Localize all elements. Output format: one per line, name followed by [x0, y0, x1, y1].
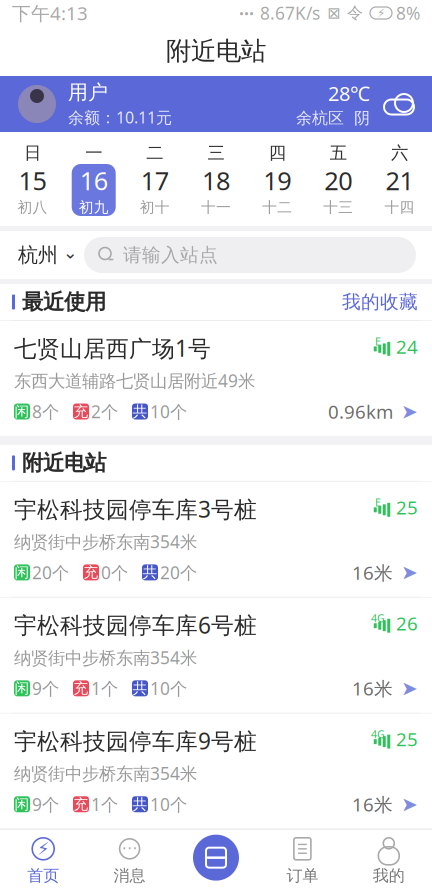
staticText: ➤	[401, 400, 418, 423]
staticText: 十一	[201, 198, 231, 216]
staticText: 闲	[14, 563, 29, 581]
staticText: 最近使用	[22, 289, 106, 315]
staticText: 25	[396, 495, 418, 520]
staticText: 充	[73, 795, 88, 813]
button[interactable]: ⋯	[86, 832, 173, 890]
staticText: ➤	[401, 677, 418, 700]
staticText: 共	[132, 795, 147, 813]
staticText: 1个	[91, 793, 118, 816]
staticText: 纳贤街中步桥东南354米	[14, 646, 197, 669]
staticText: 初九	[79, 198, 109, 216]
staticText: 一	[85, 142, 102, 164]
staticText: 三	[207, 142, 224, 164]
staticText: 16米	[352, 560, 393, 585]
staticText: 20个	[160, 561, 197, 584]
staticText: 五	[330, 142, 347, 164]
staticText: 20个	[32, 561, 69, 584]
staticText: 七贤山居西广场1号	[14, 333, 211, 363]
button[interactable]: 二	[124, 142, 185, 216]
button[interactable]: 日	[2, 142, 63, 216]
staticText: 杭州	[18, 243, 58, 267]
button[interactable]: 请输入站点	[84, 237, 416, 273]
button[interactable]: 用户	[0, 76, 432, 132]
staticText: 充	[73, 679, 88, 697]
staticText: 宇松科技园停车库3号桩	[14, 494, 257, 524]
staticText: 消息	[114, 866, 146, 885]
staticText: 21	[385, 164, 413, 197]
staticText: 余杭区 阴	[296, 108, 370, 128]
staticText: E	[375, 334, 381, 348]
staticText: 9个	[32, 793, 59, 816]
staticText: 4G	[371, 611, 385, 625]
staticText: 25	[396, 727, 418, 751]
staticText: 闲	[14, 795, 29, 813]
button[interactable]: 七贤山居西广场1号	[0, 321, 432, 436]
staticText: 十三	[323, 198, 353, 216]
staticText: 共	[142, 563, 157, 581]
button[interactable]: 四	[247, 142, 308, 216]
button[interactable]: ⚡︎	[0, 832, 86, 890]
staticText: 10个	[150, 677, 187, 700]
button[interactable]: 三	[185, 142, 246, 216]
staticText: 19	[263, 164, 291, 197]
staticText: 1个	[91, 677, 118, 700]
staticText: 宇松科技园停车库6号桩	[14, 610, 257, 640]
button[interactable]: 扫一扫	[193, 835, 239, 881]
button[interactable]: 杭州	[0, 235, 84, 275]
staticText: 附近电站	[166, 35, 266, 66]
staticText: 订单	[286, 866, 318, 885]
staticText: 10个	[150, 793, 187, 816]
staticText: 纳贤街中步桥东南354米	[14, 762, 197, 785]
staticText: 8%	[396, 1, 420, 24]
staticText: ⚡︎	[377, 6, 385, 20]
staticText: 请输入站点	[123, 243, 218, 266]
staticText: 24	[396, 334, 418, 359]
button[interactable]: 五	[308, 142, 369, 216]
staticText: 宇松科技园停车库9号桩	[14, 726, 257, 756]
staticText: 东西大道辅路七贤山居附近49米	[14, 369, 255, 392]
staticText: 四	[269, 142, 286, 164]
staticText: ➤	[401, 561, 418, 584]
staticText: 0个	[101, 561, 128, 584]
staticText: ⚡︎	[37, 839, 49, 859]
staticText: 初八	[18, 198, 48, 216]
button[interactable]: 宇松科技园停车库3号桩	[0, 482, 432, 597]
staticText: 20	[324, 164, 352, 197]
staticText: 日	[24, 142, 41, 164]
staticText: 16	[80, 164, 108, 197]
staticText: 用户	[68, 80, 108, 105]
staticText: 令	[347, 3, 363, 23]
staticText: 十四	[384, 198, 414, 216]
staticText: 闲	[14, 679, 29, 697]
staticText: E	[375, 495, 381, 509]
staticText: 10个	[150, 400, 187, 423]
button[interactable]: 六	[369, 142, 430, 216]
button[interactable]: 宇松科技园停车库9号桩	[0, 714, 432, 829]
button[interactable]: 一	[63, 142, 124, 216]
staticText: ⌄	[63, 243, 78, 262]
staticText: ⋯	[122, 839, 138, 857]
staticText: 六	[391, 142, 408, 164]
button[interactable]: 宇松科技园停车库6号桩	[0, 598, 432, 713]
staticText: 下午4:13	[12, 1, 88, 25]
staticText: 共	[132, 679, 147, 697]
button[interactable]: 我的收藏	[342, 282, 432, 321]
staticText: 16米	[352, 676, 393, 701]
staticText: •••	[239, 4, 254, 22]
staticText: 纳贤街中步桥东南354米	[14, 530, 197, 553]
staticText: 充	[73, 402, 88, 420]
staticText: 8个	[32, 400, 59, 423]
staticText: 我的收藏	[342, 290, 418, 313]
staticText: 十二	[262, 198, 292, 216]
staticText: 8.67K/s	[260, 1, 320, 24]
staticText: 共	[132, 402, 147, 420]
staticText: 首页	[27, 866, 59, 885]
staticText: 二	[146, 142, 163, 164]
staticText: 4G	[371, 727, 385, 741]
staticText: 2个	[91, 400, 118, 423]
button[interactable]: 我的	[346, 832, 432, 890]
staticText: 充	[83, 563, 98, 581]
staticText: ➤	[401, 793, 418, 816]
staticText: 17	[141, 164, 169, 197]
button[interactable]: 订单	[259, 832, 346, 890]
